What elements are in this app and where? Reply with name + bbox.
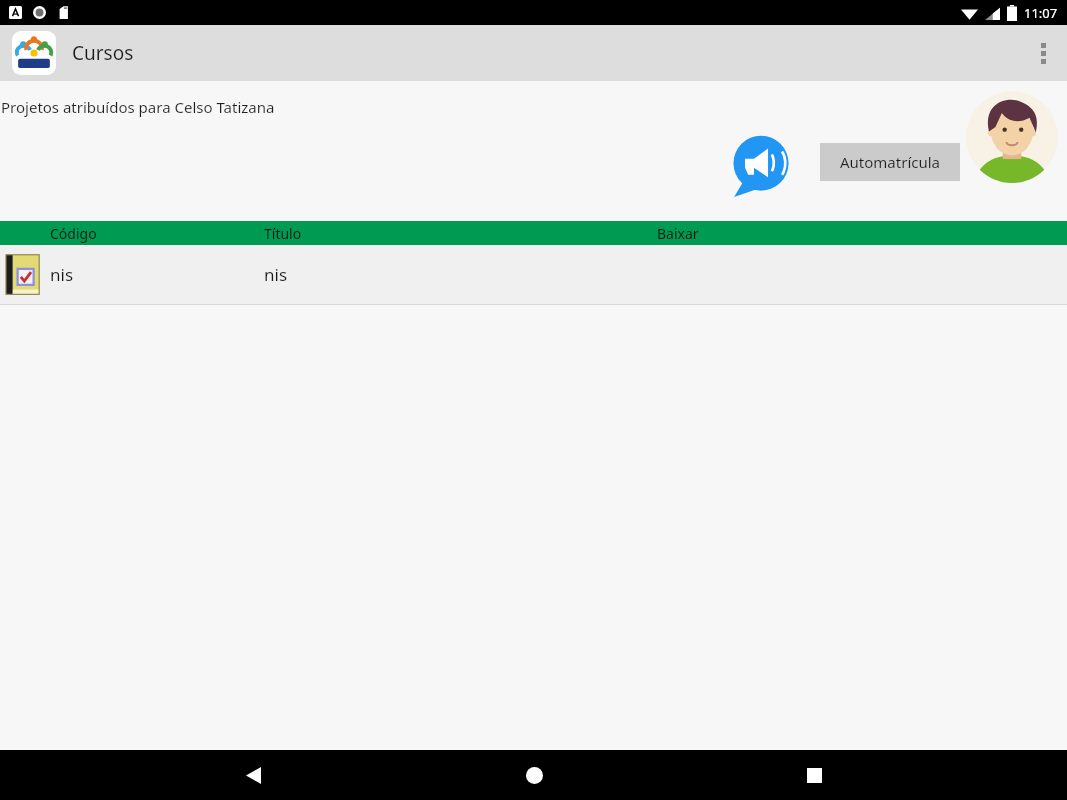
button[interactable]: nis	[0, 245, 1067, 304]
staticText: Projetos atribuídos para Celso Tatizana	[1, 97, 275, 117]
staticText: Título	[264, 224, 302, 243]
staticText: nis	[264, 263, 288, 286]
staticText: nis	[50, 263, 74, 286]
button[interactable]: Announcements	[729, 135, 793, 199]
button[interactable]: Profile	[966, 91, 1058, 183]
button[interactable]: Back	[225, 750, 281, 800]
staticText: Automatrícula	[840, 152, 941, 172]
staticText: Cursos	[72, 40, 134, 66]
button[interactable]: Home	[506, 750, 562, 800]
button[interactable]: NIS	[12, 31, 56, 75]
button[interactable]: Automatrícula	[820, 143, 960, 181]
staticText: Código	[50, 224, 97, 243]
button[interactable]: Recent apps	[786, 750, 842, 800]
staticText: Baixar	[657, 224, 699, 243]
staticText: 11:07	[1024, 4, 1058, 22]
button[interactable]: More options	[1019, 29, 1067, 77]
